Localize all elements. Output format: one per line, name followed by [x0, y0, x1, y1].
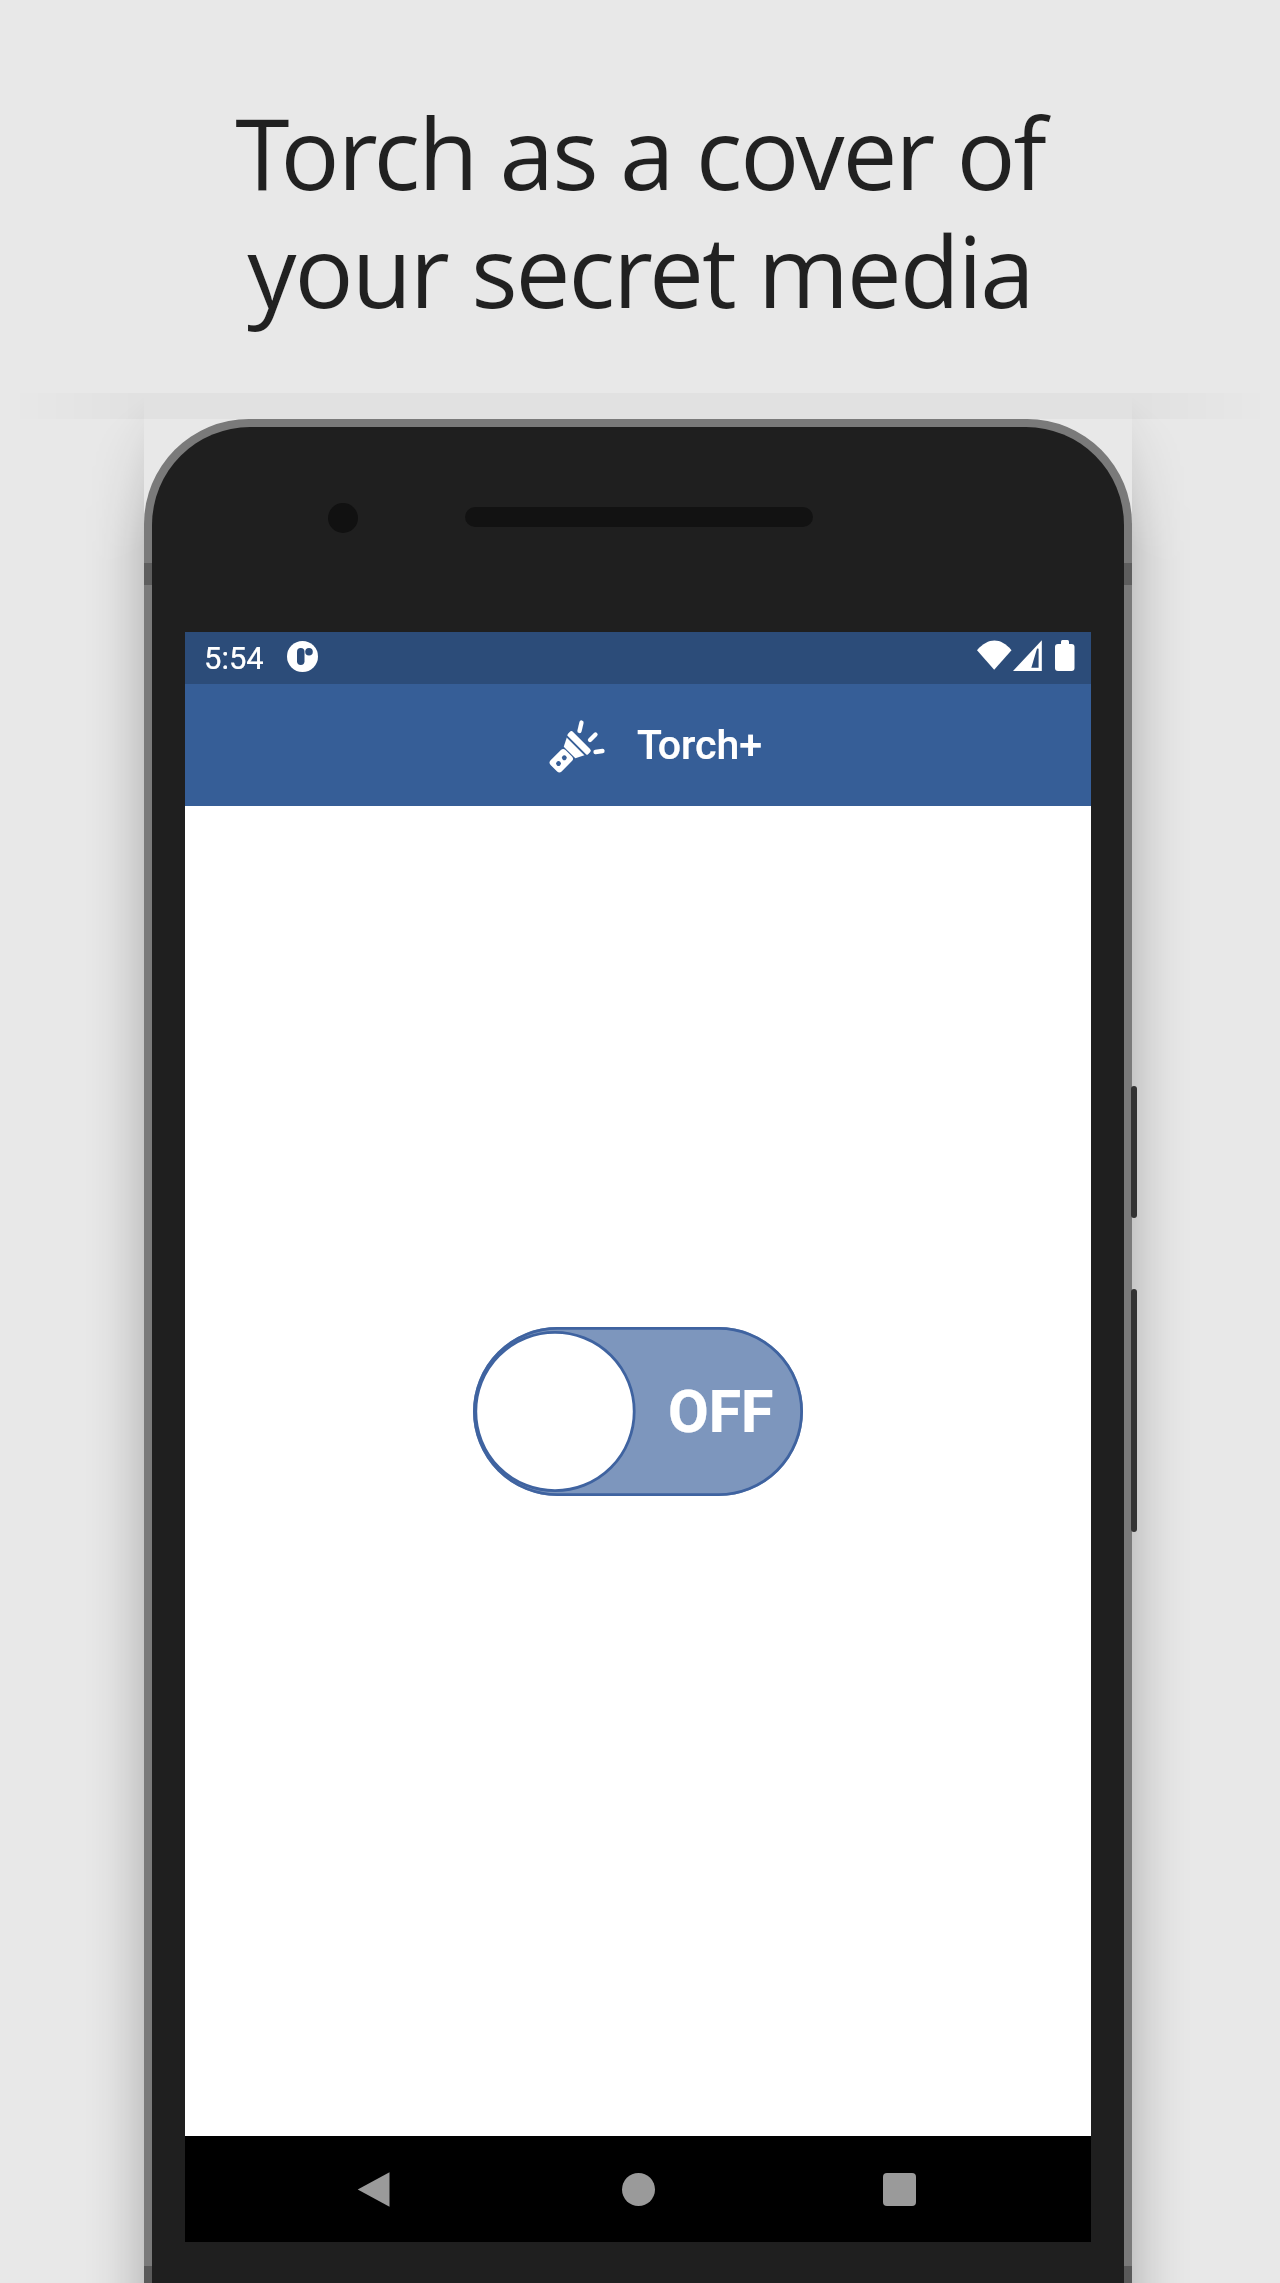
button[interactable]: Home [593, 2144, 683, 2234]
staticText: OFF [668, 1377, 774, 1446]
button[interactable]: Recents [854, 2144, 944, 2234]
staticText: Torch as a cover of your secret media [235, 85, 1045, 337]
button[interactable]: Torch toggle, off [473, 1327, 803, 1496]
button[interactable]: Back [329, 2144, 419, 2234]
button[interactable]: Torch [185, 684, 1091, 806]
staticText: Torch+ [637, 721, 763, 769]
staticText: 5:54 [204, 640, 264, 676]
other: Torch [548, 719, 610, 777]
